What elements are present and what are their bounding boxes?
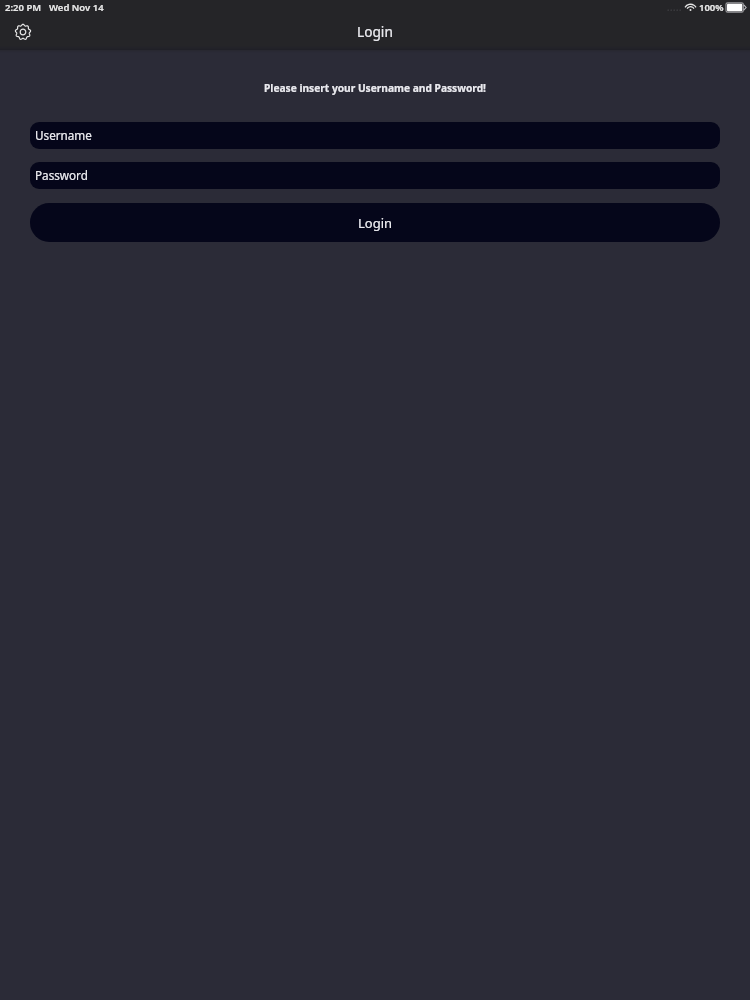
staticText: Login	[357, 22, 393, 41]
button[interactable]: Login	[30, 203, 720, 242]
staticText: 100%	[699, 1, 724, 14]
staticText: Password	[35, 167, 88, 183]
button[interactable]: Password	[30, 162, 720, 189]
button[interactable]: Settings	[9, 18, 37, 46]
staticText: 2:20 PM	[5, 1, 42, 14]
staticText: Please insert your Username and Password…	[0, 81, 750, 95]
staticText: Username	[35, 127, 92, 143]
staticText: Login	[358, 214, 393, 232]
staticText: Wed Nov 14	[49, 1, 104, 14]
button[interactable]: Username	[30, 122, 720, 149]
